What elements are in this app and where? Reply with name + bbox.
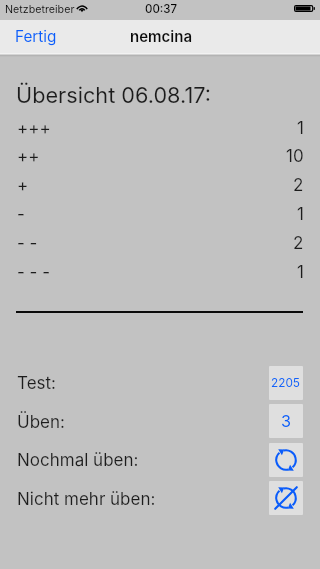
staticText: Fertig <box>15 27 57 46</box>
staticText: Üben: <box>17 412 65 433</box>
staticText: - - - <box>17 262 51 283</box>
staticText: 2205 <box>271 376 301 390</box>
button[interactable]: Fertig <box>8 20 64 53</box>
button[interactable]: Nochmal üben <box>269 443 303 477</box>
staticText: 1 <box>297 118 304 139</box>
staticText: - <box>17 204 25 225</box>
staticText: 2 <box>293 233 304 254</box>
staticText: +++ <box>17 118 51 139</box>
button[interactable]: Nicht mehr üben <box>269 481 303 515</box>
staticText: + <box>17 175 29 196</box>
staticText: Test: <box>17 373 56 394</box>
staticText: nemcina <box>130 27 193 45</box>
staticText: Übersicht 06.08.17: <box>16 82 212 108</box>
staticText: 1 <box>297 204 304 225</box>
staticText: 3 <box>281 411 291 431</box>
staticText: 1 <box>297 262 304 283</box>
staticText: ++ <box>17 146 40 167</box>
staticText: - - <box>17 233 38 254</box>
button[interactable]: 3 <box>269 404 303 438</box>
staticText: 10 <box>286 146 304 167</box>
staticText: Netzbetreiber <box>5 3 75 16</box>
staticText: Nicht mehr üben: <box>17 489 156 510</box>
staticText: 2 <box>293 175 304 196</box>
staticText: Nochmal üben: <box>17 450 139 471</box>
button[interactable]: 2205 <box>269 366 303 400</box>
staticText: 00:37 <box>145 2 178 16</box>
